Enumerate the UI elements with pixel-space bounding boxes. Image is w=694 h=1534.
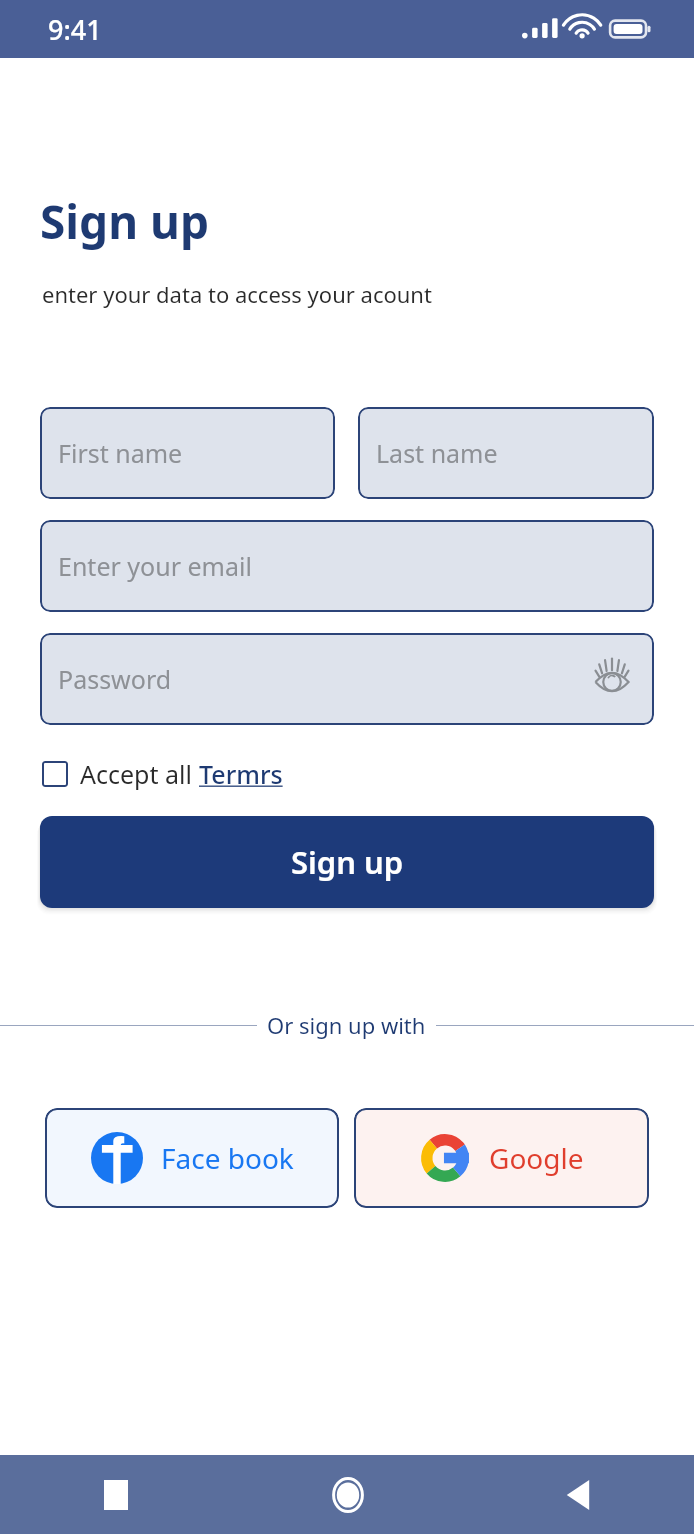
staticText: enter your data to access your acount (42, 279, 432, 309)
staticText: Termrs (199, 757, 283, 791)
staticText: Or sign up with (267, 1010, 426, 1040)
staticText: Password (58, 662, 172, 696)
button[interactable]: Last name (358, 407, 654, 499)
staticText: Sign up (40, 190, 210, 253)
staticText: Face book (161, 1139, 294, 1177)
button[interactable]: Back (463, 1455, 694, 1534)
staticText: Sign up (291, 841, 404, 883)
button[interactable]: Sign up (40, 816, 654, 908)
staticText: Enter your email (58, 549, 252, 583)
button[interactable]: Recent apps (0, 1455, 232, 1534)
button[interactable]: Password (40, 633, 654, 725)
button[interactable]: Show password (588, 655, 636, 703)
button[interactable]: Google (354, 1108, 649, 1208)
staticText: Last name (376, 436, 498, 470)
button[interactable]: Face book (45, 1108, 339, 1208)
staticText: Google (489, 1139, 584, 1177)
staticText: Accept all (80, 757, 199, 791)
button[interactable]: Accept all (42, 757, 283, 791)
button[interactable]: Enter your email (40, 520, 654, 612)
staticText: First name (58, 436, 183, 470)
button[interactable]: First name (40, 407, 335, 499)
button[interactable]: Home (232, 1455, 463, 1534)
staticText: 9:41 (48, 11, 102, 48)
